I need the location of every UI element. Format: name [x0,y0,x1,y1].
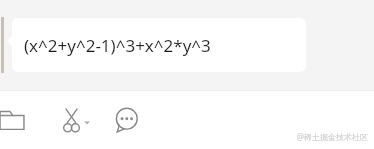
button[interactable]: Comments [104,98,148,142]
button[interactable]: Cut [52,98,100,142]
staticText: @稀土掘金技术社区 [296,131,368,142]
staticText: (x^2+y^2-1)^3+x^2*y^3 [24,34,211,57]
button[interactable]: (x^2+y^2-1)^3+x^2*y^3 [12,18,306,72]
button[interactable]: Files [0,98,34,142]
